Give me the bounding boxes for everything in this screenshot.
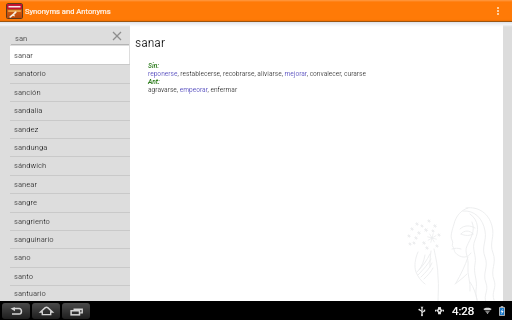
staticText: sangriento bbox=[14, 217, 50, 226]
staticText: sanear bbox=[14, 180, 37, 189]
button[interactable]: sandez bbox=[0, 120, 130, 138]
button[interactable]: sangriento bbox=[0, 212, 130, 230]
staticText: sangre bbox=[14, 198, 38, 207]
button[interactable]: sanar bbox=[0, 46, 130, 64]
button[interactable]: Recent apps bbox=[62, 303, 90, 319]
staticText: santuario bbox=[14, 289, 46, 298]
button[interactable]: santo bbox=[0, 267, 130, 285]
staticText: Sin: reponerse, restablecerse, recobrars… bbox=[148, 62, 366, 94]
button[interactable]: More options bbox=[488, 0, 508, 21]
button[interactable]: sandunga bbox=[0, 138, 130, 156]
staticText: sandez bbox=[14, 125, 39, 134]
button[interactable]: Back bbox=[2, 303, 30, 319]
staticText: 4:28 bbox=[452, 304, 475, 317]
button[interactable]: Home bbox=[32, 303, 60, 319]
staticText: Synonyms and Antonyms bbox=[25, 7, 111, 16]
staticText: sano bbox=[14, 253, 31, 262]
staticText: sándwich bbox=[14, 161, 47, 170]
staticText: sanción bbox=[14, 88, 41, 97]
staticText: sanguinario bbox=[14, 235, 54, 244]
staticText: sanar bbox=[14, 51, 33, 60]
button[interactable]: sangre bbox=[0, 193, 130, 212]
button[interactable]: sandalia bbox=[0, 101, 130, 120]
staticText: sandunga bbox=[14, 143, 48, 152]
button[interactable]: Clear search bbox=[109, 29, 125, 43]
button[interactable]: App icon bbox=[7, 4, 22, 18]
button[interactable]: sanción bbox=[0, 83, 130, 101]
staticText: sanatorio bbox=[14, 69, 46, 78]
button[interactable]: sándwich bbox=[0, 156, 130, 175]
button[interactable]: sanguinario bbox=[0, 230, 130, 248]
staticText: santo bbox=[14, 272, 33, 281]
staticText: san bbox=[15, 34, 28, 43]
staticText: sandalia bbox=[14, 106, 43, 115]
button[interactable]: sanear bbox=[0, 175, 130, 193]
button[interactable]: sano bbox=[0, 248, 130, 267]
button[interactable]: santuario bbox=[0, 285, 130, 301]
button[interactable]: sanatorio bbox=[0, 64, 130, 83]
staticText: sanar bbox=[135, 36, 165, 50]
